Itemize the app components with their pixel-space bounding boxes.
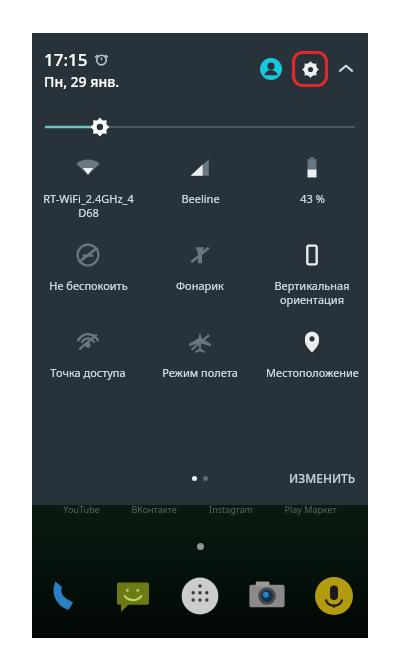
button[interactable]: Не беспокоить: [32, 242, 144, 293]
staticText: Вертикальная ориентация: [274, 278, 350, 307]
button[interactable]: ИЗМЕНИТЬ: [289, 470, 356, 486]
button[interactable]: Фонарик: [144, 242, 256, 293]
staticText: Не беспокоить: [49, 278, 128, 293]
button[interactable]: 43 %: [256, 155, 368, 206]
button[interactable]: Вертикальная ориентация: [256, 242, 368, 307]
button[interactable]: Camera: [247, 576, 287, 616]
staticText: Play Маркет: [284, 503, 337, 515]
staticText: Пн, 29 янв.: [44, 72, 120, 91]
staticText: 17:15: [44, 48, 88, 71]
button[interactable]: Collapse: [332, 55, 360, 83]
staticText: Фонарик: [176, 278, 224, 293]
button[interactable]: Режим полета: [144, 329, 256, 380]
staticText: Точка доступа: [50, 365, 126, 380]
button[interactable]: Точка доступа: [32, 329, 144, 380]
button[interactable]: Settings: [292, 51, 328, 87]
staticText: ИЗМЕНИТЬ: [289, 470, 356, 486]
button[interactable]: Phone: [46, 576, 86, 616]
button[interactable]: Beeline: [144, 155, 256, 206]
staticText: Instagram: [209, 503, 253, 515]
staticText: Beeline: [181, 191, 220, 206]
button[interactable]: Местоположение: [256, 329, 368, 380]
staticText: ВКонтакте: [131, 503, 177, 515]
staticText: Режим полета: [162, 365, 238, 380]
button[interactable]: RT-WiFi_2.4GHz_4 D68: [32, 155, 144, 220]
button[interactable]: Voice search: [314, 576, 354, 616]
staticText: 43 %: [300, 191, 325, 206]
button[interactable]: Brightness: [32, 105, 368, 149]
staticText: RT-WiFi_2.4GHz_4 D68: [43, 191, 134, 220]
staticText: YouTube: [63, 503, 100, 515]
button[interactable]: All apps: [180, 576, 220, 616]
staticText: Местоположение: [266, 365, 359, 380]
button[interactable]: Messaging: [113, 576, 153, 616]
button[interactable]: User account: [256, 54, 286, 84]
